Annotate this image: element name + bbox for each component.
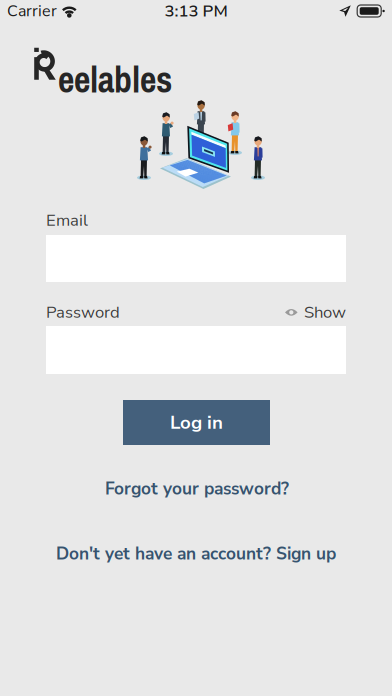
button[interactable]: Log in xyxy=(123,400,270,445)
button[interactable]: Show xyxy=(285,301,346,324)
staticText: Show xyxy=(304,301,346,324)
staticText: Don't yet have an account? Sign up xyxy=(56,542,336,566)
button[interactable]: Don't yet have an account? Sign up xyxy=(56,542,336,566)
staticText: Carrier xyxy=(7,0,57,22)
staticText: Email xyxy=(46,209,88,232)
staticText: Forgot your password? xyxy=(105,477,289,501)
staticText: 3:13 PM xyxy=(164,0,227,22)
staticText: eelables xyxy=(58,55,172,104)
staticText: Password xyxy=(46,301,120,324)
staticText: Log in xyxy=(170,410,223,435)
button[interactable]: Forgot your password? xyxy=(105,477,289,501)
